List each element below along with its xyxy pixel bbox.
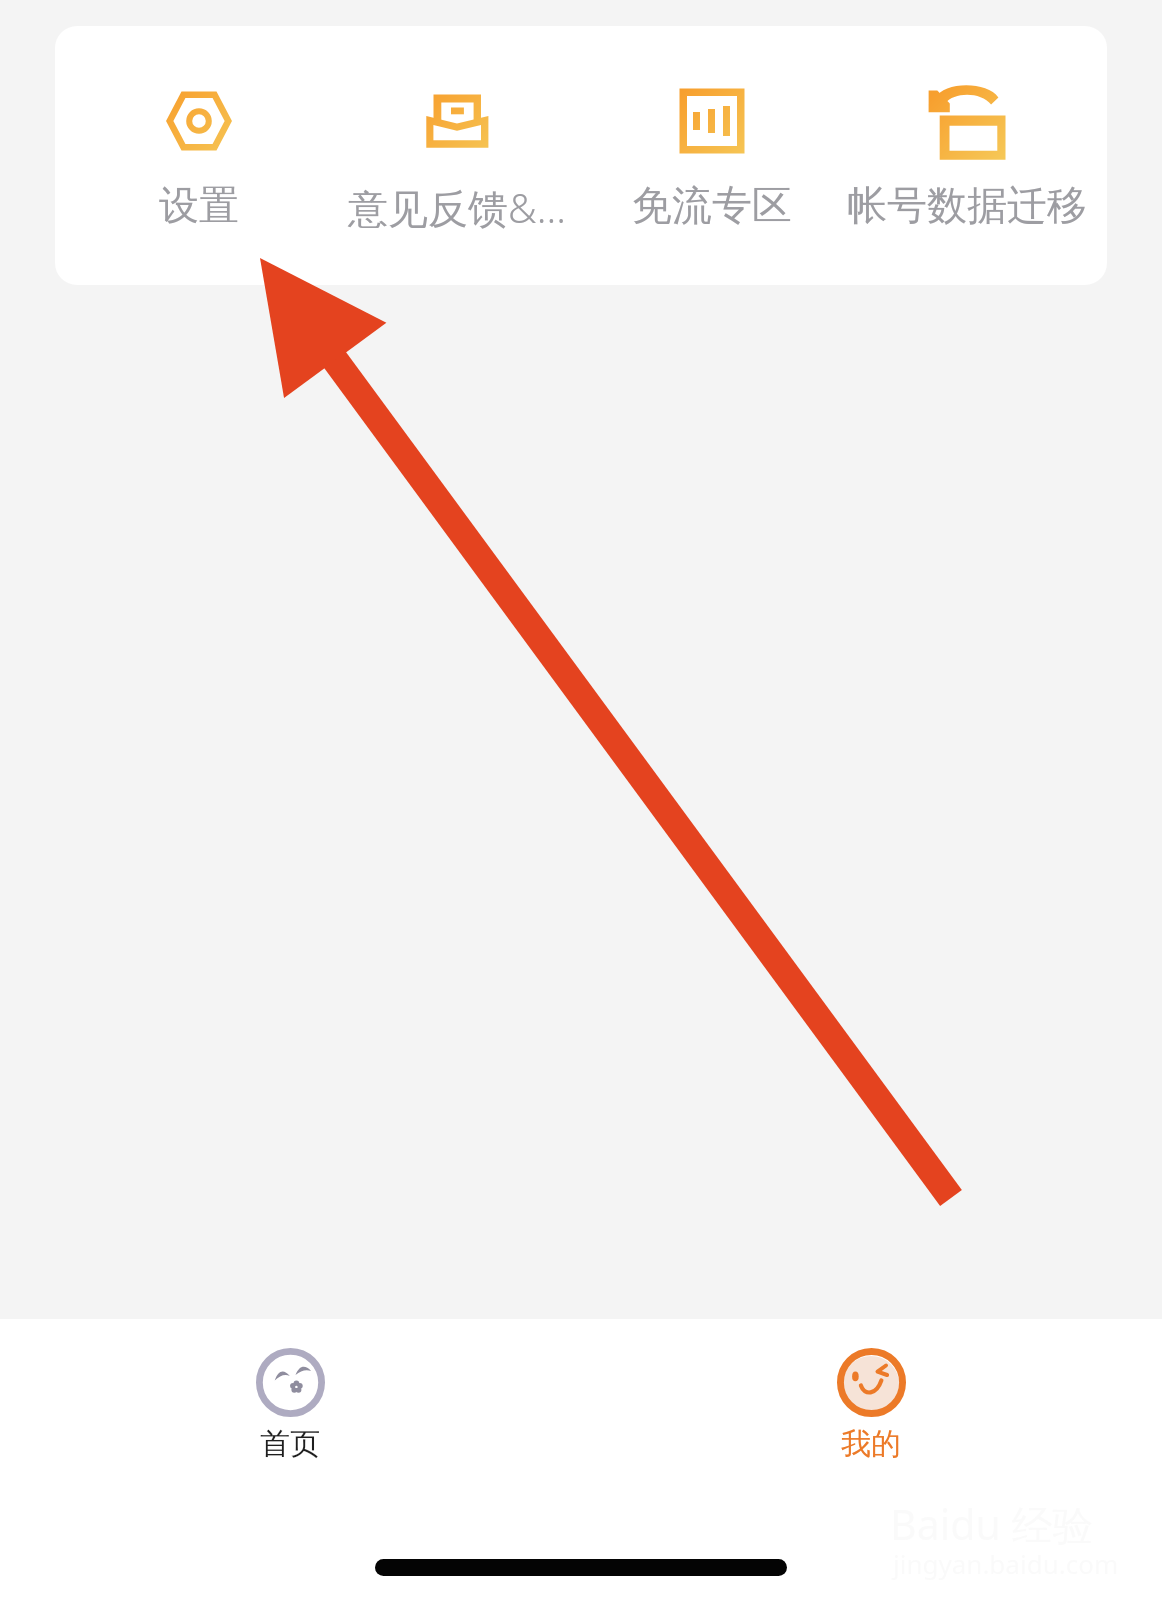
other: 帐号数据迁移 — [927, 81, 1007, 161]
button[interactable]: 帐号数据迁移 — [839, 26, 1095, 285]
staticText: 我的 — [841, 1425, 901, 1463]
button[interactable]: 我的 — [781, 1340, 961, 1480]
button[interactable]: 首页 — [200, 1340, 380, 1480]
other: 设置 — [159, 81, 239, 161]
other: 首页 — [256, 1348, 325, 1417]
staticText: 首页 — [260, 1425, 320, 1463]
button[interactable]: 免流专区 — [584, 26, 840, 285]
other: 免流专区 — [672, 81, 752, 161]
button[interactable]: 意见反馈 — [329, 26, 585, 285]
staticText: 帐号数据迁移 — [847, 180, 1087, 230]
staticText: 意见反馈&... — [348, 180, 566, 235]
staticText: 免流专区 — [632, 180, 792, 230]
button[interactable]: 设置 — [71, 26, 327, 285]
other: 意见反馈 — [417, 81, 497, 161]
other: 我的 — [837, 1348, 906, 1417]
staticText: 设置 — [159, 180, 239, 230]
